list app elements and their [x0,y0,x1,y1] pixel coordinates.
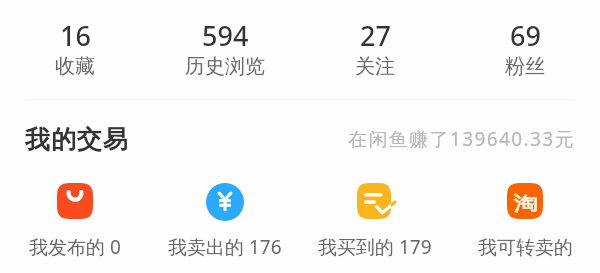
staticText: 594 [202,17,249,54]
button[interactable]: 我卖出的 [150,183,300,273]
button[interactable]: 69 [450,0,600,99]
staticText: 我的交易 [25,124,129,155]
staticText: 收藏 [55,54,95,79]
button[interactable]: 16 [0,0,150,99]
button[interactable]: 在闲鱼赚了139640.33元 [348,126,576,152]
staticText: 淘 [513,192,538,215]
button[interactable]: 我买到的 [300,183,450,273]
staticText: 16 [60,17,91,54]
staticText: 我可转卖的 [478,236,573,260]
staticText: 27 [360,17,391,54]
staticText: 我买到的 179 [318,234,432,260]
button[interactable]: 我可转卖的 [450,183,600,273]
staticText: 我卖出的 176 [168,234,282,260]
button[interactable]: 我的交易 [25,124,129,155]
button[interactable]: 我发布的 [0,183,150,273]
button[interactable]: 27 [300,0,450,99]
staticText: 关注 [355,54,395,79]
staticText: 粉丝 [505,54,545,79]
staticText: 在闲鱼赚了139640.33元 [348,126,576,152]
staticText: 69 [510,17,541,54]
button[interactable]: 594 [150,0,300,99]
staticText: 历史浏览 [185,54,265,79]
staticText: 我发布的 0 [29,234,121,260]
